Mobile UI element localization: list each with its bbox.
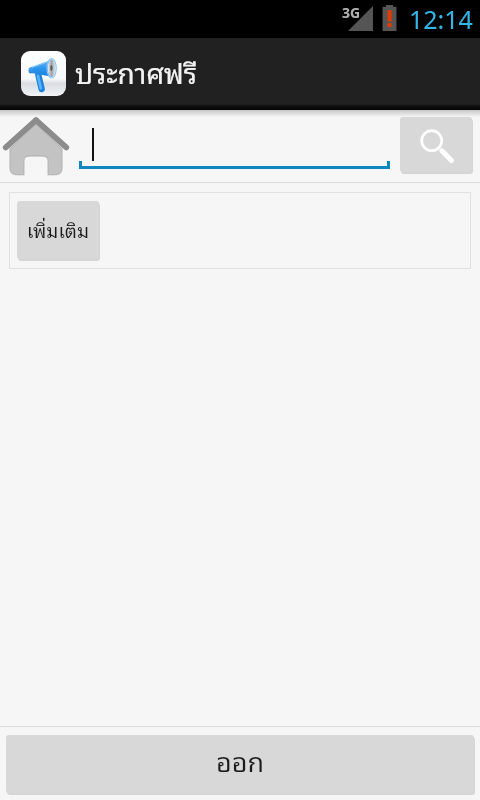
button[interactable]: Home: [0, 110, 72, 182]
staticText: 12:14: [409, 2, 473, 36]
staticText: เพิ่มเติม: [27, 214, 90, 244]
staticText: ประกาศฟรี: [75, 49, 197, 94]
staticText: 3G: [342, 3, 361, 22]
button[interactable]: ออก: [6, 735, 474, 793]
button[interactable]: [79, 119, 390, 169]
button[interactable]: Search: [400, 117, 472, 172]
staticText: ออก: [216, 738, 265, 781]
button[interactable]: เพิ่มเติม: [17, 201, 99, 259]
button[interactable]: ประกาศฟรี: [0, 38, 480, 109]
